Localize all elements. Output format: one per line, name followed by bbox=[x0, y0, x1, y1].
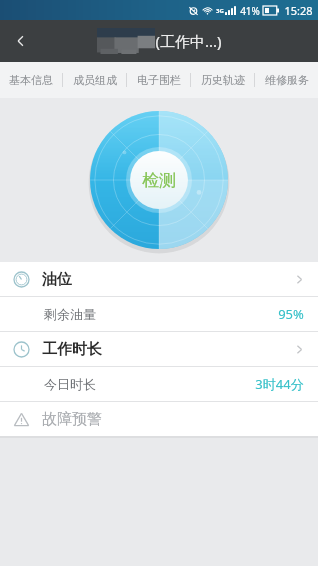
button[interactable]: 基本信息 bbox=[0, 62, 62, 98]
button[interactable]: 历史轨迹 bbox=[191, 62, 254, 98]
staticText: 电子围栏 bbox=[137, 73, 181, 87]
button[interactable]: 维修服务 bbox=[255, 62, 318, 98]
staticText: 维修服务 bbox=[265, 73, 309, 87]
staticText: (工作中...) bbox=[155, 31, 222, 51]
staticText: 油位 bbox=[42, 270, 72, 289]
staticText: 成员组成 bbox=[73, 73, 117, 87]
staticText: 3G bbox=[216, 7, 224, 15]
staticText: 95% bbox=[278, 305, 304, 323]
staticText: 基本信息 bbox=[9, 73, 53, 87]
button[interactable]: 今日时长 bbox=[0, 367, 318, 401]
staticText: 剩余油量 bbox=[44, 306, 96, 322]
staticText: 工作时长 bbox=[42, 340, 102, 359]
button[interactable]: 电子围栏 bbox=[127, 62, 190, 98]
button[interactable]: 工作时长 bbox=[0, 332, 318, 366]
staticText: 历史轨迹 bbox=[201, 73, 245, 87]
button[interactable]: Back bbox=[0, 20, 42, 62]
staticText: 41% bbox=[240, 4, 260, 18]
button[interactable]: 油位 bbox=[0, 262, 318, 296]
button[interactable]: 故障预警 bbox=[0, 402, 318, 436]
button[interactable]: 检测 bbox=[129, 150, 189, 210]
staticText: 15:28 bbox=[284, 3, 313, 18]
button[interactable]: 剩余油量 bbox=[0, 297, 318, 331]
staticText: 检测 bbox=[142, 170, 176, 191]
button[interactable]: 成员组成 bbox=[63, 62, 126, 98]
staticText: 3时44分 bbox=[255, 375, 304, 393]
staticText: 故障预警 bbox=[42, 410, 102, 429]
staticText: 今日时长 bbox=[44, 376, 96, 392]
